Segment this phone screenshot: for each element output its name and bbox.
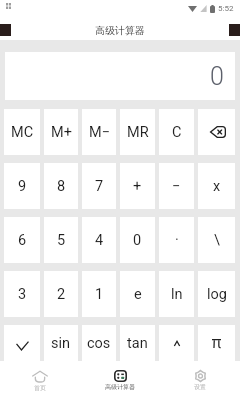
button[interactable]: e — [120, 271, 155, 317]
staticText: tan — [127, 335, 148, 352]
button[interactable]: sin — [44, 325, 78, 361]
button[interactable]: 1 — [82, 271, 116, 317]
staticText: cos — [87, 335, 111, 352]
button[interactable]: 高级计算器 — [80, 361, 160, 400]
staticText: 2 — [57, 286, 66, 303]
staticText: 9 — [18, 178, 27, 195]
staticText: 4 — [95, 232, 104, 249]
button[interactable]: 7 — [82, 163, 116, 209]
button[interactable]: MR — [120, 109, 155, 155]
staticText: 8 — [57, 178, 66, 195]
button[interactable]: 2 — [44, 271, 78, 317]
staticText: 0 — [133, 232, 142, 249]
staticText: − — [172, 178, 181, 195]
button[interactable]: \ — [198, 217, 235, 263]
button[interactable]: cos — [82, 325, 116, 361]
staticText: 首页 — [34, 384, 46, 392]
staticText: sin — [51, 335, 71, 352]
button[interactable] — [4, 325, 40, 361]
button[interactable]: x — [198, 163, 235, 209]
staticText: M− — [89, 124, 110, 141]
staticText: 1 — [95, 286, 104, 303]
staticText: 高级计算器 — [95, 24, 145, 37]
button[interactable] — [159, 325, 194, 361]
button[interactable]: 8 — [44, 163, 78, 209]
button[interactable]: 9 — [4, 163, 40, 209]
button[interactable]: ln — [159, 271, 194, 317]
button[interactable]: tan — [120, 325, 155, 361]
button[interactable]: C — [159, 109, 194, 155]
button[interactable]: 6 — [4, 217, 40, 263]
staticText: x — [213, 178, 221, 195]
button[interactable]: MC — [4, 109, 40, 155]
button[interactable]: M− — [82, 109, 116, 155]
staticText: 3 — [18, 286, 27, 303]
staticText: 5 — [57, 232, 66, 249]
staticText: 0 — [210, 62, 224, 91]
button[interactable]: 0 — [120, 217, 155, 263]
button[interactable]: 3 — [4, 271, 40, 317]
staticText: C — [172, 124, 182, 141]
staticText: 设置 — [194, 383, 206, 391]
staticText: 7 — [95, 178, 104, 195]
button[interactable]: 首页 — [0, 361, 80, 400]
button[interactable]: · — [159, 217, 194, 263]
button[interactable] — [198, 109, 235, 155]
button[interactable] — [198, 325, 235, 361]
staticText: log — [207, 286, 227, 303]
button[interactable]: + — [120, 163, 155, 209]
staticText: MC — [11, 124, 34, 141]
button[interactable]: log — [198, 271, 235, 317]
button[interactable]: 5 — [44, 217, 78, 263]
staticText: MR — [127, 124, 149, 141]
button[interactable]: 4 — [82, 217, 116, 263]
staticText: 6 — [18, 232, 27, 249]
staticText: ln — [171, 286, 183, 303]
button[interactable]: − — [159, 163, 194, 209]
button[interactable]: 设置 — [160, 361, 240, 400]
staticText: · — [175, 232, 179, 249]
staticText: 高级计算器 — [105, 383, 135, 391]
staticText: + — [133, 178, 142, 195]
button[interactable]: M+ — [44, 109, 78, 155]
staticText: 5:52 — [218, 4, 234, 13]
staticText: \ — [214, 232, 220, 249]
staticText: e — [134, 286, 142, 303]
staticText: M+ — [51, 124, 72, 141]
